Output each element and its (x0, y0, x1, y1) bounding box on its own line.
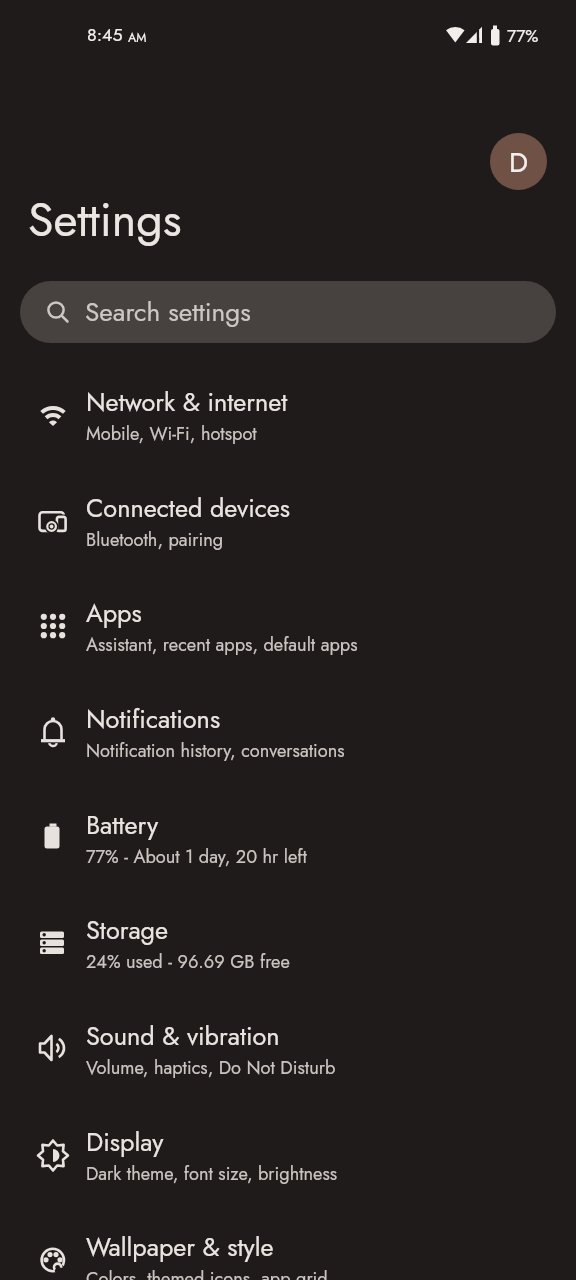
staticText: Settings (28, 186, 182, 253)
staticText: 77% (507, 23, 539, 48)
button[interactable]: Notifications (0, 679, 576, 785)
button[interactable]: Wallpaper & style (0, 1207, 576, 1280)
button[interactable]: Connected devices (0, 468, 576, 574)
staticText: Connected devices (86, 490, 291, 527)
button[interactable]: D (490, 133, 547, 190)
staticText: Network & internet (86, 384, 288, 421)
staticText: Sound & vibration (86, 1018, 280, 1055)
staticText: 77% - About 1 day, 20 hr left (86, 844, 307, 870)
staticText: Notifications (86, 701, 221, 738)
staticText: Display (86, 1124, 164, 1161)
staticText: Assistant, recent apps, default apps (86, 632, 358, 658)
button[interactable]: Sound & vibration (0, 996, 576, 1102)
staticText: Colors, themed icons, app grid (86, 1266, 328, 1280)
staticText: Battery (86, 807, 159, 844)
button[interactable]: Search settings (20, 281, 556, 343)
button[interactable]: Display (0, 1102, 576, 1208)
button[interactable]: Storage (0, 890, 576, 996)
staticText: AM (128, 29, 147, 47)
button[interactable]: Battery (0, 785, 576, 891)
staticText: Mobile, Wi-Fi, hotspot (86, 421, 257, 447)
staticText: Notification history, conversations (86, 738, 345, 764)
staticText: Search settings (85, 293, 251, 331)
staticText: Storage (86, 912, 169, 949)
staticText: Apps (86, 595, 142, 632)
staticText: Volume, haptics, Do Not Disturb (86, 1055, 336, 1081)
staticText: 24% used - 96.69 GB free (86, 949, 290, 975)
staticText: 8:45 (87, 22, 123, 48)
button[interactable]: Network & internet (0, 362, 576, 468)
staticText: Bluetooth, pairing (86, 527, 224, 553)
staticText: D (509, 142, 529, 182)
button[interactable]: Apps (0, 573, 576, 679)
staticText: Dark theme, font size, brightness (86, 1161, 338, 1187)
staticText: Wallpaper & style (86, 1229, 274, 1266)
